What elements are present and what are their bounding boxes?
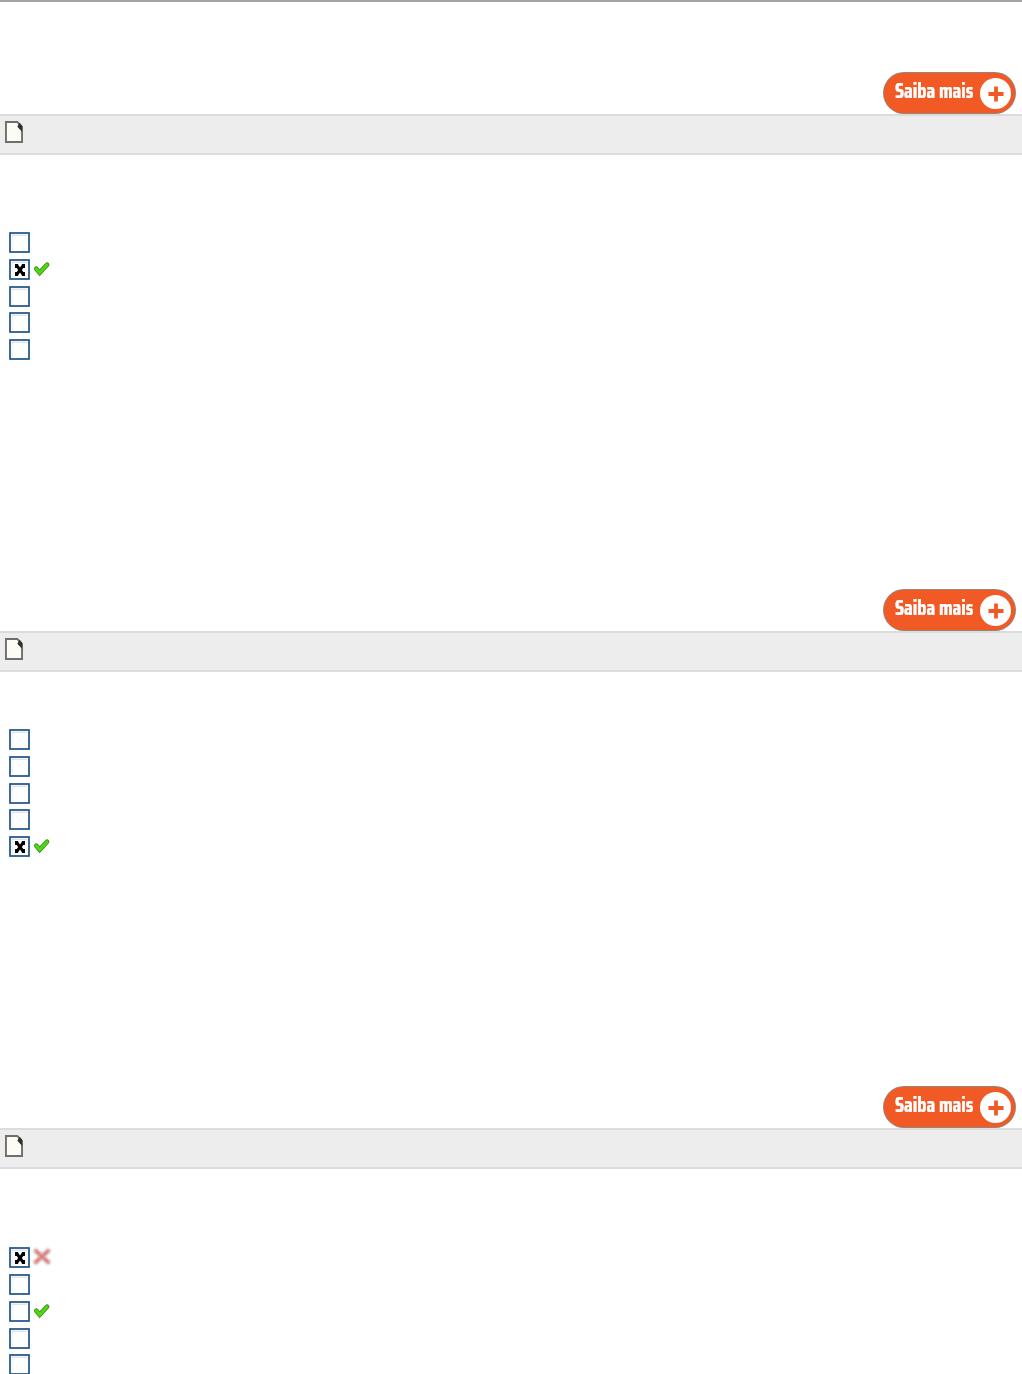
button[interactable]: Answer option checkbox bbox=[10, 1302, 29, 1321]
staticText: Saiba mais bbox=[895, 1089, 974, 1121]
button[interactable]: Answer option checkbox bbox=[10, 757, 29, 776]
button[interactable]: Answer option checkbox bbox=[10, 260, 29, 279]
staticText: Saiba mais bbox=[895, 592, 974, 624]
button[interactable]: Answer option checkbox bbox=[10, 233, 29, 252]
button[interactable]: Saiba mais bbox=[884, 1087, 1015, 1127]
button[interactable]: Answer option checkbox bbox=[10, 730, 29, 749]
button[interactable]: Answer option checkbox bbox=[10, 340, 29, 359]
button[interactable]: Answer option checkbox bbox=[10, 1248, 29, 1267]
button[interactable]: Open question document bbox=[0, 1128, 1022, 1169]
button[interactable]: Answer option checkbox bbox=[10, 1355, 29, 1374]
button[interactable]: Saiba mais bbox=[884, 73, 1015, 113]
button[interactable]: Answer option checkbox bbox=[10, 837, 29, 856]
button[interactable]: Answer option checkbox bbox=[10, 313, 29, 332]
button[interactable]: Saiba mais bbox=[884, 590, 1015, 630]
button[interactable]: Open question document bbox=[0, 631, 1022, 672]
button[interactable]: Answer option checkbox bbox=[10, 1275, 29, 1294]
staticText: Saiba mais bbox=[895, 75, 974, 107]
button[interactable]: Answer option checkbox bbox=[10, 810, 29, 829]
button[interactable]: Answer option checkbox bbox=[10, 784, 29, 803]
button[interactable]: Open question document bbox=[0, 114, 1022, 155]
button[interactable]: Answer option checkbox bbox=[10, 287, 29, 306]
button[interactable]: Answer option checkbox bbox=[10, 1329, 29, 1348]
